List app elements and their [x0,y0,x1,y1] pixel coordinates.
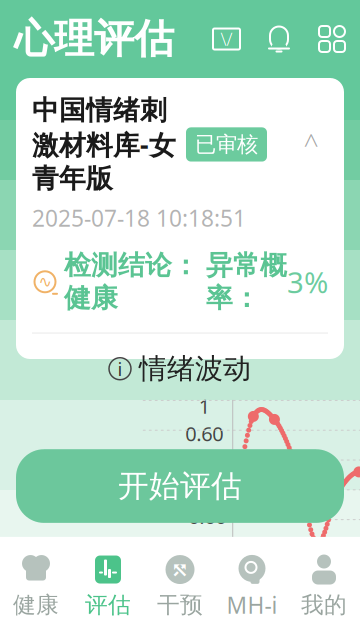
staticText: ⤲ [171,557,189,582]
staticText: -1 [196,531,213,557]
staticText: 干预 [157,591,203,619]
staticText: 中国情绪刺激材料库-女青年版 [32,94,176,195]
staticText: -0.20 [182,475,226,502]
button[interactable]: 健康 [0,546,72,627]
staticText: 已审核 [195,131,258,158]
button[interactable]: MH-i [216,545,288,628]
button[interactable]: 通知 [266,25,292,53]
staticText: 5 [331,556,342,582]
staticText: 开始评估 [118,467,242,505]
button[interactable]: 更多功能 [318,25,346,53]
staticText: ∿ [38,273,51,291]
staticText: 评估 [85,591,131,619]
staticText: 4 [312,556,323,582]
staticText: 检测结论：健康 [64,249,199,314]
staticText: 3% [287,262,328,301]
staticText: 1 [199,393,210,419]
staticText: 我的 [301,591,347,619]
staticText: 0.60 [185,420,223,447]
staticText: 情绪波动 [139,351,251,386]
staticText: \/ [220,27,232,50]
staticText: -0.60 [182,503,226,530]
staticText: 心理评估 [14,14,174,63]
staticText: 健康 [13,591,59,619]
staticText: MH-i [226,590,277,620]
staticText: 0.20 [185,448,223,474]
staticText: 异常概率： [206,249,287,314]
staticText: 2025-07-18 10:18:51 [32,203,246,233]
button[interactable]: ⤲ [144,546,216,627]
button[interactable]: 收起 [294,129,328,159]
button[interactable]: 评估 [72,546,144,627]
staticText: 0 [236,556,247,582]
button[interactable]: 开始评估 [16,449,344,523]
staticText: i [117,356,122,381]
button[interactable]: 我的 [288,546,360,627]
staticText: 1 [255,556,266,582]
button[interactable]: 消息 [213,28,240,49]
staticText: ^ [303,127,318,162]
